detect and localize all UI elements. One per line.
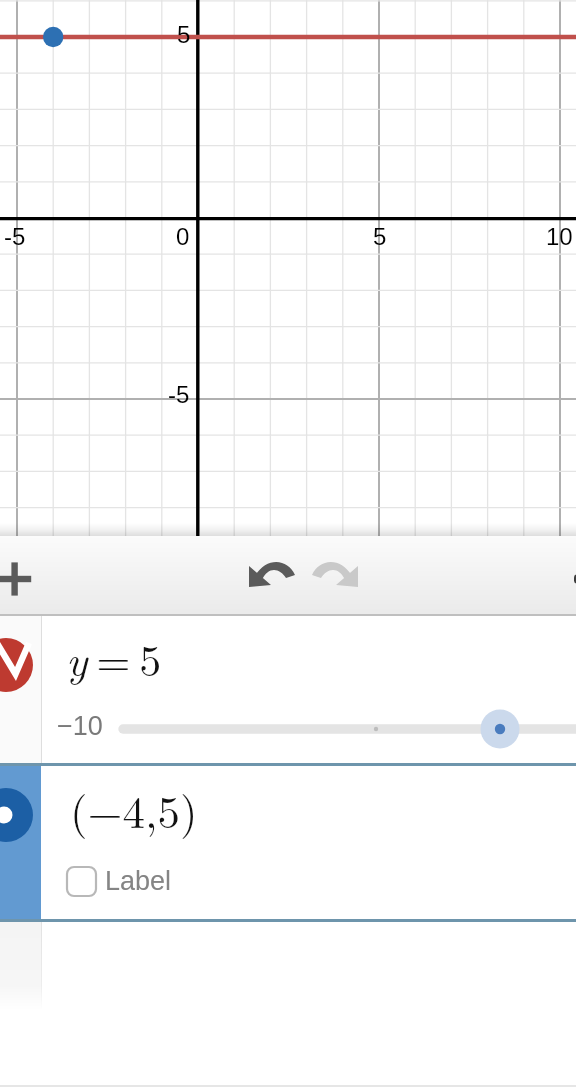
staticText: 0: [176, 223, 190, 250]
staticText: 10: [546, 223, 573, 250]
staticText: 5: [373, 223, 387, 250]
button[interactable]: [42, 616, 576, 763]
staticText: (−4,5): [70, 777, 198, 841]
staticText: −10: [57, 711, 103, 741]
button[interactable]: Toggle point: [0, 766, 41, 919]
button[interactable]: Redo: [307, 544, 363, 600]
button[interactable]: Keyboard: [574, 551, 576, 607]
button[interactable]: Add expression: [0, 544, 50, 614]
button[interactable]: Toggle curve y = 5: [0, 616, 41, 763]
staticText: -5: [168, 381, 190, 408]
staticText: -5: [4, 223, 26, 250]
staticText: Label: [105, 866, 172, 896]
button[interactable]: Label: [0, 860, 576, 902]
button[interactable]: Undo: [244, 544, 300, 600]
staticText: y = 5: [66, 626, 162, 688]
button[interactable]: [41, 766, 576, 919]
staticText: 5: [177, 21, 191, 48]
